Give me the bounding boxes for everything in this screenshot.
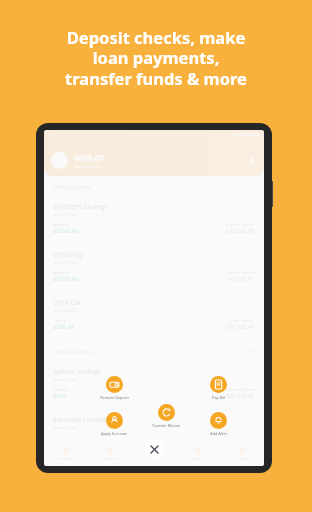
staticText: $1.00 [53, 392, 68, 399]
staticText: Transfer Money [152, 423, 180, 428]
staticText: $699.00 [74, 152, 104, 163]
button[interactable] [132, 442, 176, 466]
staticText: Share ID xxx [53, 308, 77, 313]
staticText: Available [53, 387, 70, 392]
staticText: Pay Bill [212, 395, 225, 400]
staticText: Current Balance [226, 270, 255, 275]
staticText: Transfers [102, 456, 118, 461]
staticText: Total balance [74, 164, 99, 169]
button[interactable]: Remote Deposit [88, 376, 140, 400]
staticText: Used Car [53, 298, 82, 307]
staticText: Share ID xxx [53, 425, 77, 430]
staticText: Share ID xxx [53, 377, 77, 382]
button[interactable]: Transfer Money [140, 404, 192, 428]
staticText: Main Accounts [53, 183, 91, 190]
staticText: Remote Deposit [100, 395, 129, 400]
staticText: Accounts [59, 456, 74, 461]
staticText: Available [53, 270, 70, 275]
staticText: Deposit checks, make loan payments, tran… [65, 26, 247, 90]
staticText: $1,812.91 [229, 275, 255, 282]
staticText: Available [53, 222, 70, 227]
button[interactable]: Voice assistant [245, 155, 257, 167]
staticText: Special Savings [53, 367, 102, 376]
staticText: Standard Savings [53, 202, 108, 211]
staticText: Checking [53, 250, 83, 259]
staticText: More [238, 456, 247, 461]
staticText: $1,812.00 [53, 275, 79, 282]
button[interactable]: Accounts [44, 442, 88, 466]
staticText: Other Accounts [53, 348, 94, 355]
staticText: Share ID xxx [53, 212, 77, 217]
button[interactable]: Apply for Loan [88, 412, 140, 436]
staticText: Loan Balance [231, 318, 255, 323]
staticText: $33,866.00 [226, 227, 255, 234]
button[interactable]: More [220, 442, 264, 466]
staticText: Current Balance [226, 387, 255, 392]
staticText: Essential Checking [53, 415, 113, 424]
staticText: Share ID xxx [53, 260, 77, 265]
button[interactable]: Pay Bill [192, 376, 244, 400]
staticText: Add Alert [210, 431, 227, 436]
staticText: Current Balance [226, 222, 255, 227]
button[interactable]: Close menu [144, 439, 164, 459]
staticText: Deals [193, 456, 203, 461]
staticText: $11,905.48 [226, 323, 255, 330]
staticText: $20,245.00 [226, 392, 255, 399]
staticText: $298.54 [53, 323, 74, 330]
staticText: $3,866.00 [53, 227, 79, 234]
staticText: Apply for Loan [101, 431, 127, 436]
button[interactable]: Essential Checking [44, 410, 264, 442]
staticText: Due Apr 1 [53, 318, 71, 323]
button[interactable]: Add Alert [192, 412, 244, 436]
button[interactable]: Special Savings [44, 362, 264, 409]
